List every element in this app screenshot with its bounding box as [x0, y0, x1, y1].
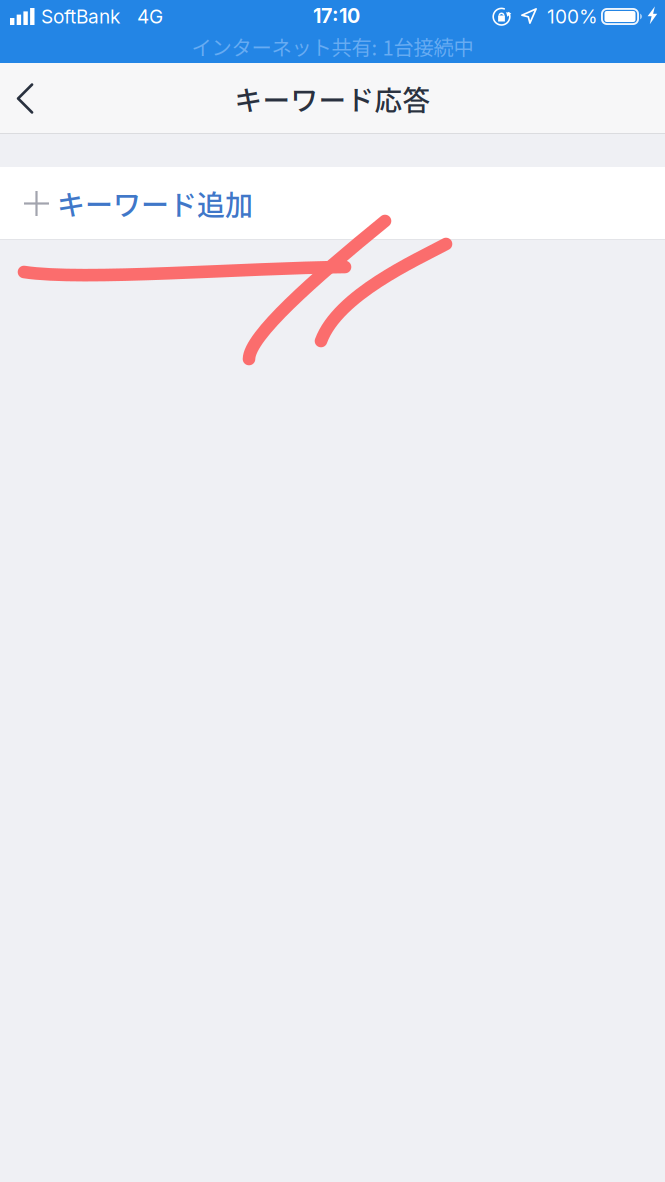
- staticText: 4G: [137, 5, 163, 28]
- staticText: SoftBank: [41, 5, 120, 28]
- button[interactable]: キーワード追加: [0, 167, 665, 240]
- button[interactable]: Back: [0, 63, 50, 134]
- staticText: インターネット共有: 1台接続中: [191, 32, 473, 61]
- staticText: 17:10: [313, 4, 360, 28]
- staticText: キーワード追加: [57, 183, 253, 224]
- staticText: 100%: [547, 5, 598, 28]
- staticText: キーワード応答: [234, 78, 430, 118]
